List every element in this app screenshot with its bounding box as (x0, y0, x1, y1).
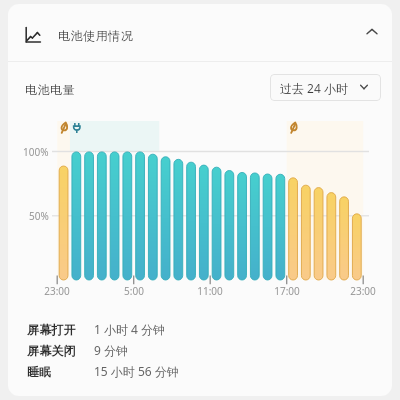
staticText: 睡眠 (27, 364, 52, 379)
staticText: 11:00 (197, 284, 223, 298)
staticText: 电池电量 (25, 82, 76, 97)
staticText: 电池使用情况 (58, 28, 134, 43)
button[interactable]: 屏幕打开 (8, 320, 392, 338)
staticText: 1 小时 4 分钟 (94, 321, 166, 337)
staticText: 23:00 (44, 284, 70, 298)
button[interactable]: 屏幕关闭 (8, 341, 392, 359)
staticText: 15 小时 56 分钟 (94, 363, 179, 379)
staticText: 9 分钟 (94, 342, 128, 358)
staticText: 100% (23, 145, 49, 159)
staticText: 过去 24 小时 (280, 80, 348, 96)
staticText: 5:00 (124, 284, 144, 298)
staticText: 屏幕关闭 (27, 343, 76, 358)
button[interactable]: Collapse (354, 14, 390, 50)
button[interactable]: 睡眠 (8, 362, 392, 380)
button[interactable]: 过去 24 小时 (270, 74, 381, 101)
button[interactable]: 电池使用情况 (8, 4, 392, 61)
staticText: 23:00 (350, 284, 376, 298)
staticText: 17:00 (274, 284, 300, 298)
staticText: 50% (29, 209, 49, 223)
staticText: 屏幕打开 (27, 322, 76, 337)
